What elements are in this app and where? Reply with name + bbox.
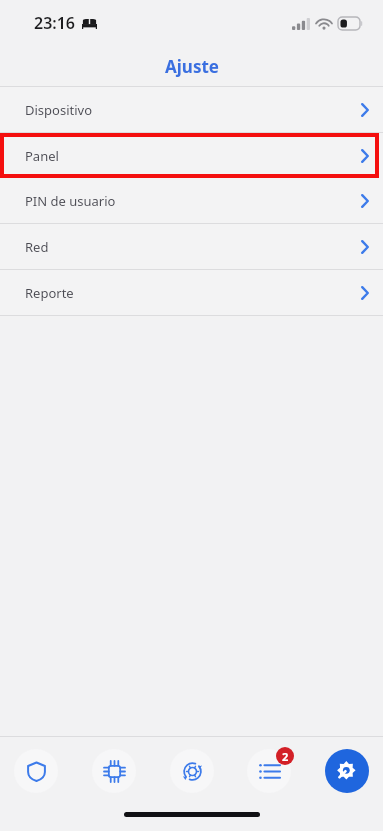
- staticText: Reporte: [25, 284, 74, 302]
- staticText: 23:16: [34, 12, 76, 34]
- button[interactable]: Dispositivo: [0, 87, 383, 132]
- button[interactable]: Dispositivo: [92, 749, 136, 793]
- button[interactable]: Seguridad: [14, 749, 58, 793]
- staticText: Red: [25, 238, 49, 256]
- staticText: 2: [282, 749, 289, 764]
- button[interactable]: Eventos: [247, 749, 291, 793]
- button[interactable]: PIN de usuario: [0, 178, 383, 223]
- button[interactable]: Reporte: [0, 270, 383, 315]
- staticText: PIN de usuario: [25, 192, 116, 210]
- staticText: Dispositivo: [25, 101, 93, 119]
- staticText: Panel: [25, 147, 59, 165]
- button[interactable]: Panel: [0, 133, 383, 178]
- button[interactable]: Sincronizar: [170, 749, 214, 793]
- button[interactable]: Ajuste: [325, 749, 369, 793]
- staticText: Ajuste: [165, 55, 219, 78]
- button[interactable]: Red: [0, 224, 383, 269]
